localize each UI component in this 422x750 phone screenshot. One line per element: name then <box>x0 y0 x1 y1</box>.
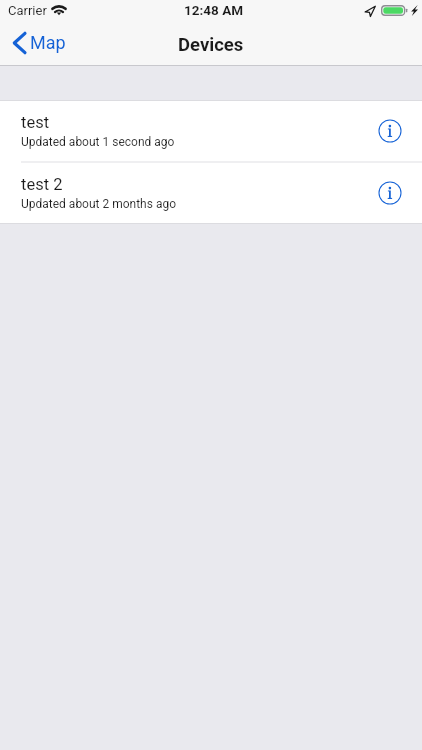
button[interactable]: Map <box>13 32 66 54</box>
staticText: Devices <box>178 34 244 56</box>
button[interactable]: More info <box>375 116 405 146</box>
staticText: test <box>21 113 50 132</box>
staticText: Carrier <box>8 3 47 18</box>
button[interactable]: test 2 <box>0 163 422 223</box>
staticText: test 2 <box>21 175 63 194</box>
button[interactable]: More info <box>375 178 405 208</box>
staticText: Updated about 2 months ago <box>21 197 177 211</box>
staticText: Updated about 1 second ago <box>21 135 175 149</box>
button[interactable]: test <box>0 101 422 161</box>
staticText: Map <box>30 32 66 53</box>
staticText: 12:48 AM <box>184 2 244 18</box>
